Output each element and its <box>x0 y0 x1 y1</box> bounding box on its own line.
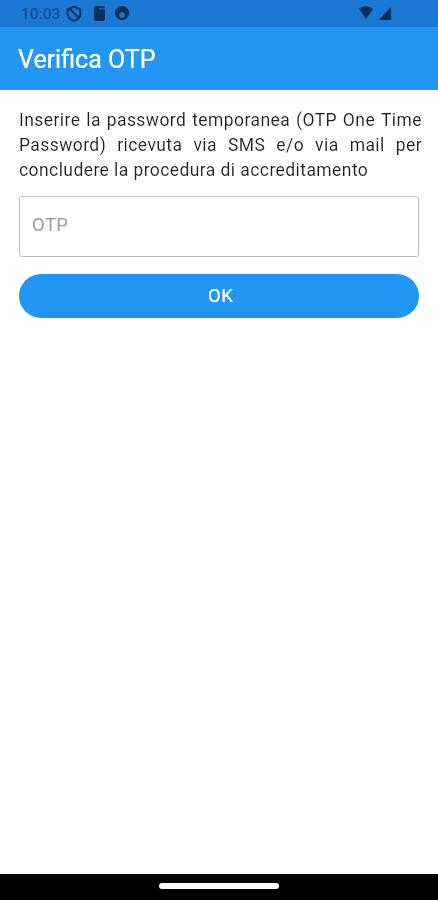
staticText: OTP <box>32 214 69 236</box>
button[interactable]: OK <box>19 274 419 318</box>
staticText: OK <box>208 285 234 307</box>
button[interactable]: OTP <box>19 196 419 257</box>
staticText: Verifica OTP <box>18 45 156 74</box>
staticText: Inserire la password temporanea (OTP One… <box>19 110 422 180</box>
staticText: 10:03 <box>21 5 61 23</box>
